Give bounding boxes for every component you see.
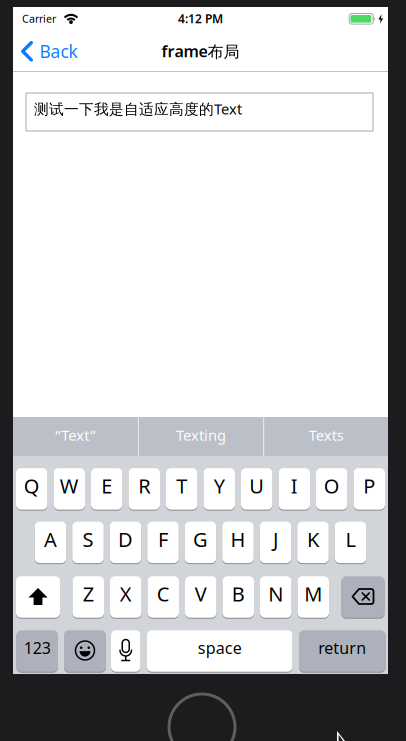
button[interactable]: B [222, 576, 254, 618]
staticText: I [291, 472, 298, 499]
staticText: J [273, 526, 278, 552]
staticText: F [158, 526, 168, 552]
staticText: A [44, 526, 57, 552]
button[interactable]: Dictate [111, 630, 140, 672]
staticText: D [118, 526, 133, 552]
staticText: space [198, 637, 242, 658]
button[interactable]: 123 [16, 630, 58, 672]
button[interactable]: Y [203, 468, 235, 510]
button[interactable]: J [260, 521, 291, 564]
staticText: P [363, 472, 375, 499]
staticText: W [60, 472, 79, 499]
staticText: V [195, 580, 207, 607]
button[interactable]: O [316, 468, 347, 510]
staticText: “Text” [55, 425, 95, 445]
staticText: X [120, 580, 132, 607]
staticText: E [101, 472, 112, 499]
button[interactable]: Emoji [64, 630, 106, 672]
staticText: R [138, 472, 150, 499]
button[interactable]: M [297, 576, 329, 618]
button[interactable]: return [299, 630, 385, 672]
button[interactable]: K [297, 521, 329, 564]
button[interactable]: I [278, 468, 310, 510]
staticText: K [307, 526, 319, 552]
button[interactable]: G [185, 521, 216, 564]
button[interactable]: U [241, 468, 272, 510]
button[interactable]: Q [16, 468, 47, 510]
staticText: T [176, 472, 187, 499]
button[interactable]: R [128, 468, 160, 510]
staticText: 测试一下我是自适应高度的Text [34, 99, 242, 118]
button[interactable]: T [166, 468, 197, 510]
staticText: O [324, 472, 340, 499]
button[interactable]: “Text” [13, 417, 138, 456]
button[interactable]: S [72, 521, 104, 564]
button[interactable]: Shift [16, 576, 60, 618]
button[interactable]: Delete [341, 576, 384, 618]
staticText: G [193, 526, 208, 552]
staticText: Texting [176, 425, 226, 445]
staticText: return [318, 637, 366, 658]
staticText: 123 [24, 637, 51, 658]
staticText: S [82, 526, 93, 552]
staticText: B [232, 580, 245, 607]
button[interactable]: L [335, 521, 366, 564]
staticText: L [345, 526, 355, 552]
staticText: M [304, 580, 322, 607]
button[interactable]: E [91, 468, 122, 510]
button[interactable]: D [110, 521, 141, 564]
button[interactable]: A [35, 521, 66, 564]
staticText: 4:12 PM [178, 10, 223, 26]
button[interactable]: V [185, 576, 216, 618]
button[interactable]: N [260, 576, 291, 618]
staticText: Q [24, 472, 40, 499]
staticText: U [249, 472, 264, 499]
button[interactable]: Z [72, 576, 104, 618]
button[interactable]: X [110, 576, 141, 618]
staticText: frame布局 [161, 40, 239, 62]
staticText: Back [39, 40, 77, 63]
staticText: C [157, 580, 170, 607]
staticText: Y [214, 472, 225, 499]
button[interactable]: Texting [139, 417, 263, 456]
staticText: Z [83, 580, 94, 607]
button[interactable]: F [147, 521, 179, 564]
button[interactable]: space [147, 630, 292, 672]
button[interactable]: P [353, 468, 385, 510]
button[interactable]: H [222, 521, 254, 564]
staticText: Carrier [22, 11, 56, 26]
staticText: N [268, 580, 283, 607]
staticText: Texts [309, 425, 344, 445]
button[interactable]: Back [21, 33, 78, 70]
staticText: H [230, 526, 245, 552]
button[interactable]: Texts [264, 417, 388, 456]
button[interactable]: C [147, 576, 179, 618]
button[interactable]: W [53, 468, 85, 510]
